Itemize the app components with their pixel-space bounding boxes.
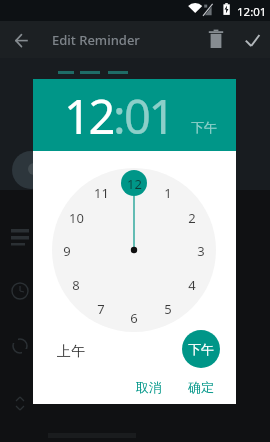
staticText: 10 (69, 209, 84, 225)
staticText: 8 (72, 276, 80, 292)
button[interactable]: 01 (124, 84, 173, 148)
button[interactable]: Back (8, 26, 36, 54)
button[interactable]: Save (239, 26, 267, 54)
staticText: 取消 (136, 379, 162, 395)
staticText: 1 (164, 184, 172, 200)
button[interactable]: 下午 (182, 330, 220, 368)
staticText: 11 (94, 184, 109, 200)
staticText: Edit Reminder (52, 31, 140, 49)
staticText: 5 (164, 300, 172, 316)
button[interactable]: 确定 (180, 373, 222, 401)
staticText: 4 (188, 276, 196, 292)
button[interactable]: 上午 (49, 335, 93, 369)
staticText: 下午 (188, 341, 214, 357)
button[interactable]: Delete (202, 26, 230, 54)
staticText: 上午 (57, 343, 85, 361)
button[interactable]: 12 (64, 84, 113, 148)
staticText: 2 (188, 209, 196, 225)
staticText: 7 (97, 300, 105, 316)
staticText: 9 (63, 242, 71, 258)
button[interactable]: 下午 (191, 119, 217, 135)
staticText: 12:01 (237, 4, 267, 20)
staticText: 确定 (188, 379, 214, 395)
button[interactable]: 取消 (128, 373, 170, 401)
staticText: 12 (127, 175, 142, 191)
staticText: : (113, 84, 124, 148)
staticText: 6 (130, 309, 138, 325)
staticText: 3 (197, 242, 205, 258)
